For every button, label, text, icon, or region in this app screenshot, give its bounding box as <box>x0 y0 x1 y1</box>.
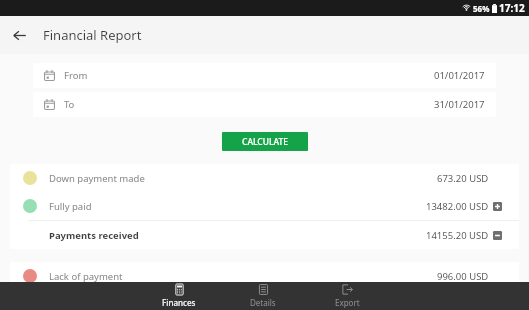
button[interactable]: Fully paid <box>10 192 519 220</box>
staticText: 673.20 USD <box>437 172 489 185</box>
staticText: 996.00 USD <box>437 270 489 283</box>
staticText: Details <box>250 297 276 308</box>
staticText: Financial Report <box>43 26 142 44</box>
button[interactable]: CALCULATE <box>222 132 308 151</box>
staticText: 14155.20 USD <box>426 229 489 242</box>
button[interactable]: Back <box>0 16 38 54</box>
staticText: 17:12 <box>499 1 525 15</box>
button[interactable]: Payments received <box>10 221 519 249</box>
staticText: 56% <box>473 3 490 14</box>
staticText: From <box>64 69 88 82</box>
staticText: 31/01/2017 <box>434 98 485 111</box>
staticText: Lack of payment <box>49 270 123 283</box>
button[interactable]: From <box>33 63 496 88</box>
button[interactable]: Payment on place <box>10 290 519 310</box>
staticText: 01/01/2017 <box>434 69 485 82</box>
button[interactable]: Details <box>234 282 292 310</box>
button[interactable]: Lack of payment <box>10 262 519 290</box>
button[interactable]: To <box>33 92 496 117</box>
staticText: Payments received <box>49 229 139 242</box>
button[interactable]: Down payment made <box>10 164 519 192</box>
staticText: 13482.00 USD <box>426 200 489 213</box>
staticText: Finances <box>162 297 196 308</box>
staticText: Fully paid <box>49 200 92 213</box>
staticText: To <box>64 98 75 111</box>
button[interactable]: Export <box>318 282 376 310</box>
staticText: Export <box>335 297 360 308</box>
staticText: CALCULATE <box>242 136 289 148</box>
button[interactable]: Finances <box>150 282 208 310</box>
staticText: Down payment made <box>49 172 145 185</box>
